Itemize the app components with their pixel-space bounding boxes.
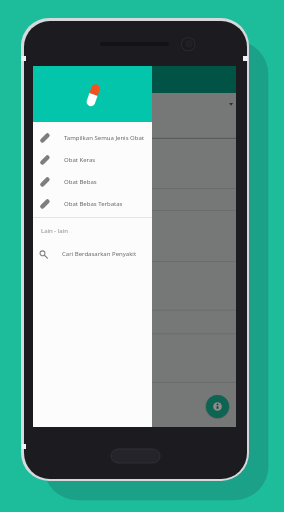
button[interactable]: Obat Bebas Terbatas — [33, 193, 152, 215]
button[interactable]: Cari Berdasarkan Penyakit — [33, 243, 152, 265]
button[interactable]: Tampilkan Semua Jenis Obat — [33, 127, 152, 149]
staticText: Cari Berdasarkan Penyakit — [62, 250, 137, 258]
staticText: Obat Bebas — [64, 178, 97, 186]
button[interactable]: Info — [205, 394, 230, 419]
staticText: Obat Bebas Terbatas — [64, 200, 123, 208]
staticText: Lain - lain — [41, 227, 68, 235]
staticText: Obat Keras — [64, 156, 96, 164]
button[interactable]: Obat Keras — [33, 149, 152, 171]
staticText: Tampilkan Semua Jenis Obat — [64, 134, 144, 142]
button[interactable]: Obat Bebas — [33, 171, 152, 193]
